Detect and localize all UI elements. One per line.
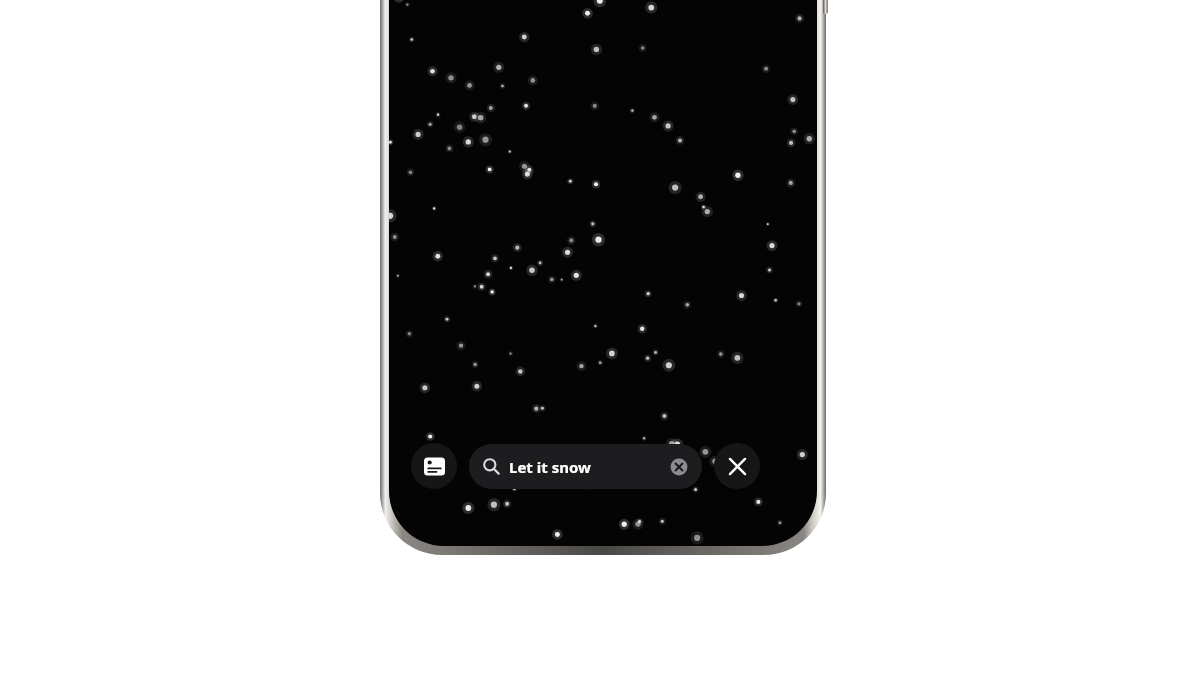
button[interactable]: Close <box>714 443 760 489</box>
button[interactable]: Clear search <box>670 458 688 476</box>
button[interactable]: Gift cards <box>411 443 457 489</box>
button[interactable]: Let it snow <box>469 444 702 489</box>
staticText: Let it snow <box>509 457 670 477</box>
